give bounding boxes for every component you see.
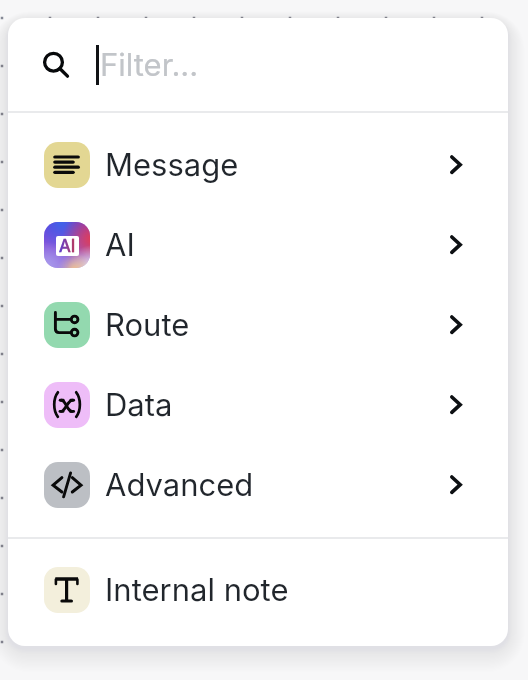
staticText: AI xyxy=(105,226,135,264)
button[interactable]: Advanced xyxy=(8,445,508,525)
staticText: Advanced xyxy=(105,466,254,504)
button[interactable]: Filter xyxy=(8,18,508,111)
staticText: Route xyxy=(105,306,190,344)
staticText: Internal note xyxy=(105,571,289,609)
button[interactable]: Route xyxy=(8,285,508,365)
other: Search xyxy=(43,48,77,82)
staticText: AI xyxy=(59,236,76,256)
button[interactable]: AI xyxy=(8,205,508,285)
button[interactable]: Data xyxy=(8,365,508,445)
staticText: Message xyxy=(105,146,239,184)
button[interactable]: Message xyxy=(8,125,508,205)
staticText: Filter... xyxy=(100,46,199,84)
staticText: Data xyxy=(105,386,173,424)
button[interactable]: Internal note xyxy=(8,550,508,630)
